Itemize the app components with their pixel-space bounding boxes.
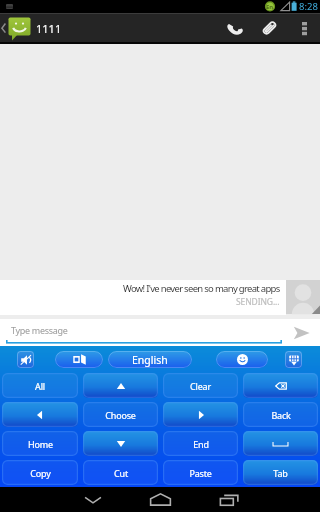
button[interactable]: Type message: [0, 319, 320, 346]
staticText: SENDING...: [236, 296, 280, 308]
staticText: Home: [28, 438, 53, 450]
button[interactable]: Clear: [163, 373, 238, 398]
button[interactable]: Send: [282, 319, 320, 346]
button[interactable]: Home: [139, 487, 181, 512]
button[interactable]: End: [163, 431, 238, 456]
staticText: Tab: [273, 467, 288, 479]
button[interactable]: Hide keyboard: [72, 487, 113, 512]
button[interactable]: Tab: [243, 460, 318, 485]
button[interactable]: [83, 431, 158, 456]
button[interactable]: Hide keyboard: [285, 351, 302, 368]
staticText: Back: [271, 409, 291, 421]
staticText: English: [132, 353, 168, 367]
staticText: 8:28: [299, 0, 318, 13]
staticText: Choose: [105, 409, 136, 421]
button[interactable]: Mute: [17, 351, 34, 368]
button[interactable]: Copy: [2, 460, 78, 485]
button[interactable]: [2, 402, 78, 427]
staticText: Paste: [189, 467, 212, 479]
button[interactable]: [243, 373, 318, 398]
button[interactable]: Recent apps: [208, 487, 250, 512]
staticText: All: [35, 380, 45, 392]
button[interactable]: [83, 373, 158, 398]
button[interactable]: [243, 431, 318, 456]
button[interactable]: 1111: [0, 14, 62, 42]
staticText: Cut: [114, 467, 128, 479]
button[interactable]: Attach: [252, 14, 286, 42]
button[interactable]: Home: [2, 431, 78, 456]
button[interactable]: Call: [218, 14, 252, 42]
button[interactable]: [163, 402, 238, 427]
staticText: Type message: [11, 324, 68, 336]
button[interactable]: Emoji: [216, 351, 268, 368]
staticText: 1111: [36, 21, 62, 36]
button[interactable]: Switch input method: [55, 351, 103, 368]
staticText: Copy: [30, 467, 51, 479]
staticText: En: [266, 3, 274, 11]
button[interactable]: English: [108, 351, 192, 368]
staticText: End: [193, 438, 209, 450]
button[interactable]: More options: [289, 14, 320, 42]
button[interactable]: All: [2, 373, 78, 398]
button[interactable]: Back: [243, 402, 318, 427]
button[interactable]: Cut: [83, 460, 158, 485]
staticText: Clear: [190, 380, 211, 392]
staticText: Wow! I've never seen so many great apps: [123, 282, 280, 295]
button[interactable]: Choose: [83, 402, 158, 427]
button[interactable]: Paste: [163, 460, 238, 485]
